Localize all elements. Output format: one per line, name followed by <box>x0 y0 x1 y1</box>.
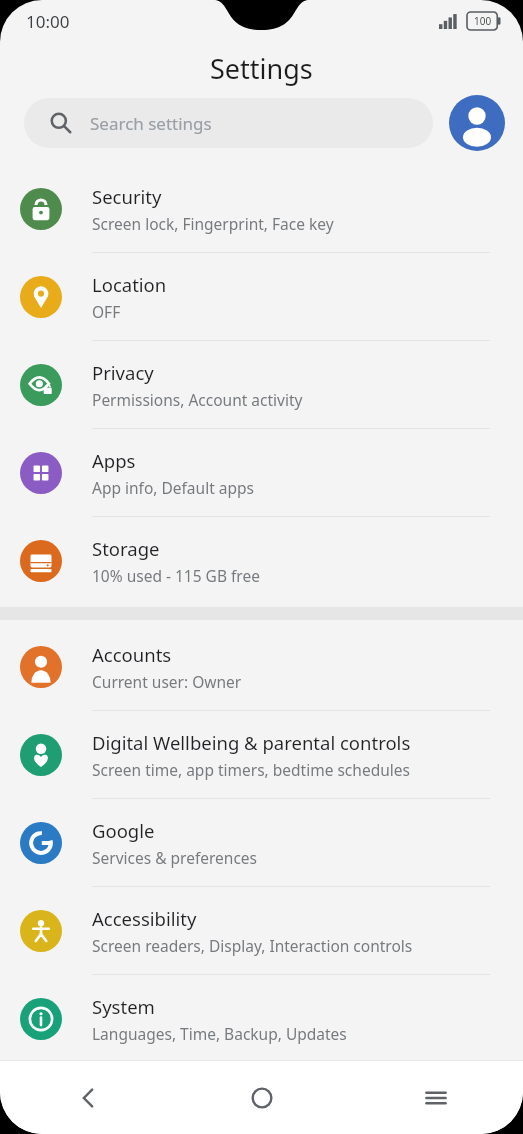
button[interactable]: Google <box>0 799 523 887</box>
staticText: Google <box>92 818 155 843</box>
staticText: App info, Default apps <box>92 477 254 498</box>
staticText: Storage <box>92 536 160 561</box>
staticText: Accessibility <box>92 906 197 931</box>
staticText: Security <box>92 184 162 209</box>
button[interactable]: Back <box>0 1061 175 1134</box>
button[interactable]: Privacy <box>0 341 523 429</box>
staticText: Privacy <box>92 360 154 385</box>
staticText: Accounts <box>92 642 172 667</box>
button[interactable]: Storage <box>0 517 523 604</box>
staticText: 10% used - 115 GB free <box>92 565 260 586</box>
staticText: 10:00 <box>26 10 70 33</box>
staticText: System <box>92 994 155 1019</box>
staticText: Digital Wellbeing & parental controls <box>92 730 411 755</box>
button[interactable]: Apps <box>0 429 523 517</box>
staticText: 100 <box>474 14 492 28</box>
staticText: Location <box>92 272 167 297</box>
staticText: Apps <box>92 448 136 473</box>
staticText: Current user: Owner <box>92 671 242 692</box>
button[interactable]: Digital Wellbeing & parental controls <box>0 711 523 799</box>
staticText: Services & preferences <box>92 847 257 868</box>
staticText: Settings <box>210 50 313 87</box>
staticText: OFF <box>92 301 121 322</box>
button[interactable]: Accounts <box>0 623 523 711</box>
button[interactable]: Search settings <box>24 98 433 148</box>
staticText: Languages, Time, Backup, Updates <box>92 1023 347 1044</box>
staticText: Screen time, app timers, bedtime schedul… <box>92 759 410 780</box>
button[interactable]: System <box>0 975 523 1062</box>
button[interactable]: Location <box>0 253 523 341</box>
button[interactable]: Accessibility <box>0 887 523 975</box>
staticText: Permissions, Account activity <box>92 389 303 410</box>
button[interactable]: Security <box>0 165 523 253</box>
staticText: Search settings <box>90 112 212 135</box>
button[interactable]: Account profile <box>449 95 505 151</box>
staticText: Screen lock, Fingerprint, Face key <box>92 213 334 234</box>
button[interactable]: Home <box>175 1061 349 1134</box>
staticText: Screen readers, Display, Interaction con… <box>92 935 413 956</box>
button[interactable]: Recent apps <box>349 1061 523 1134</box>
